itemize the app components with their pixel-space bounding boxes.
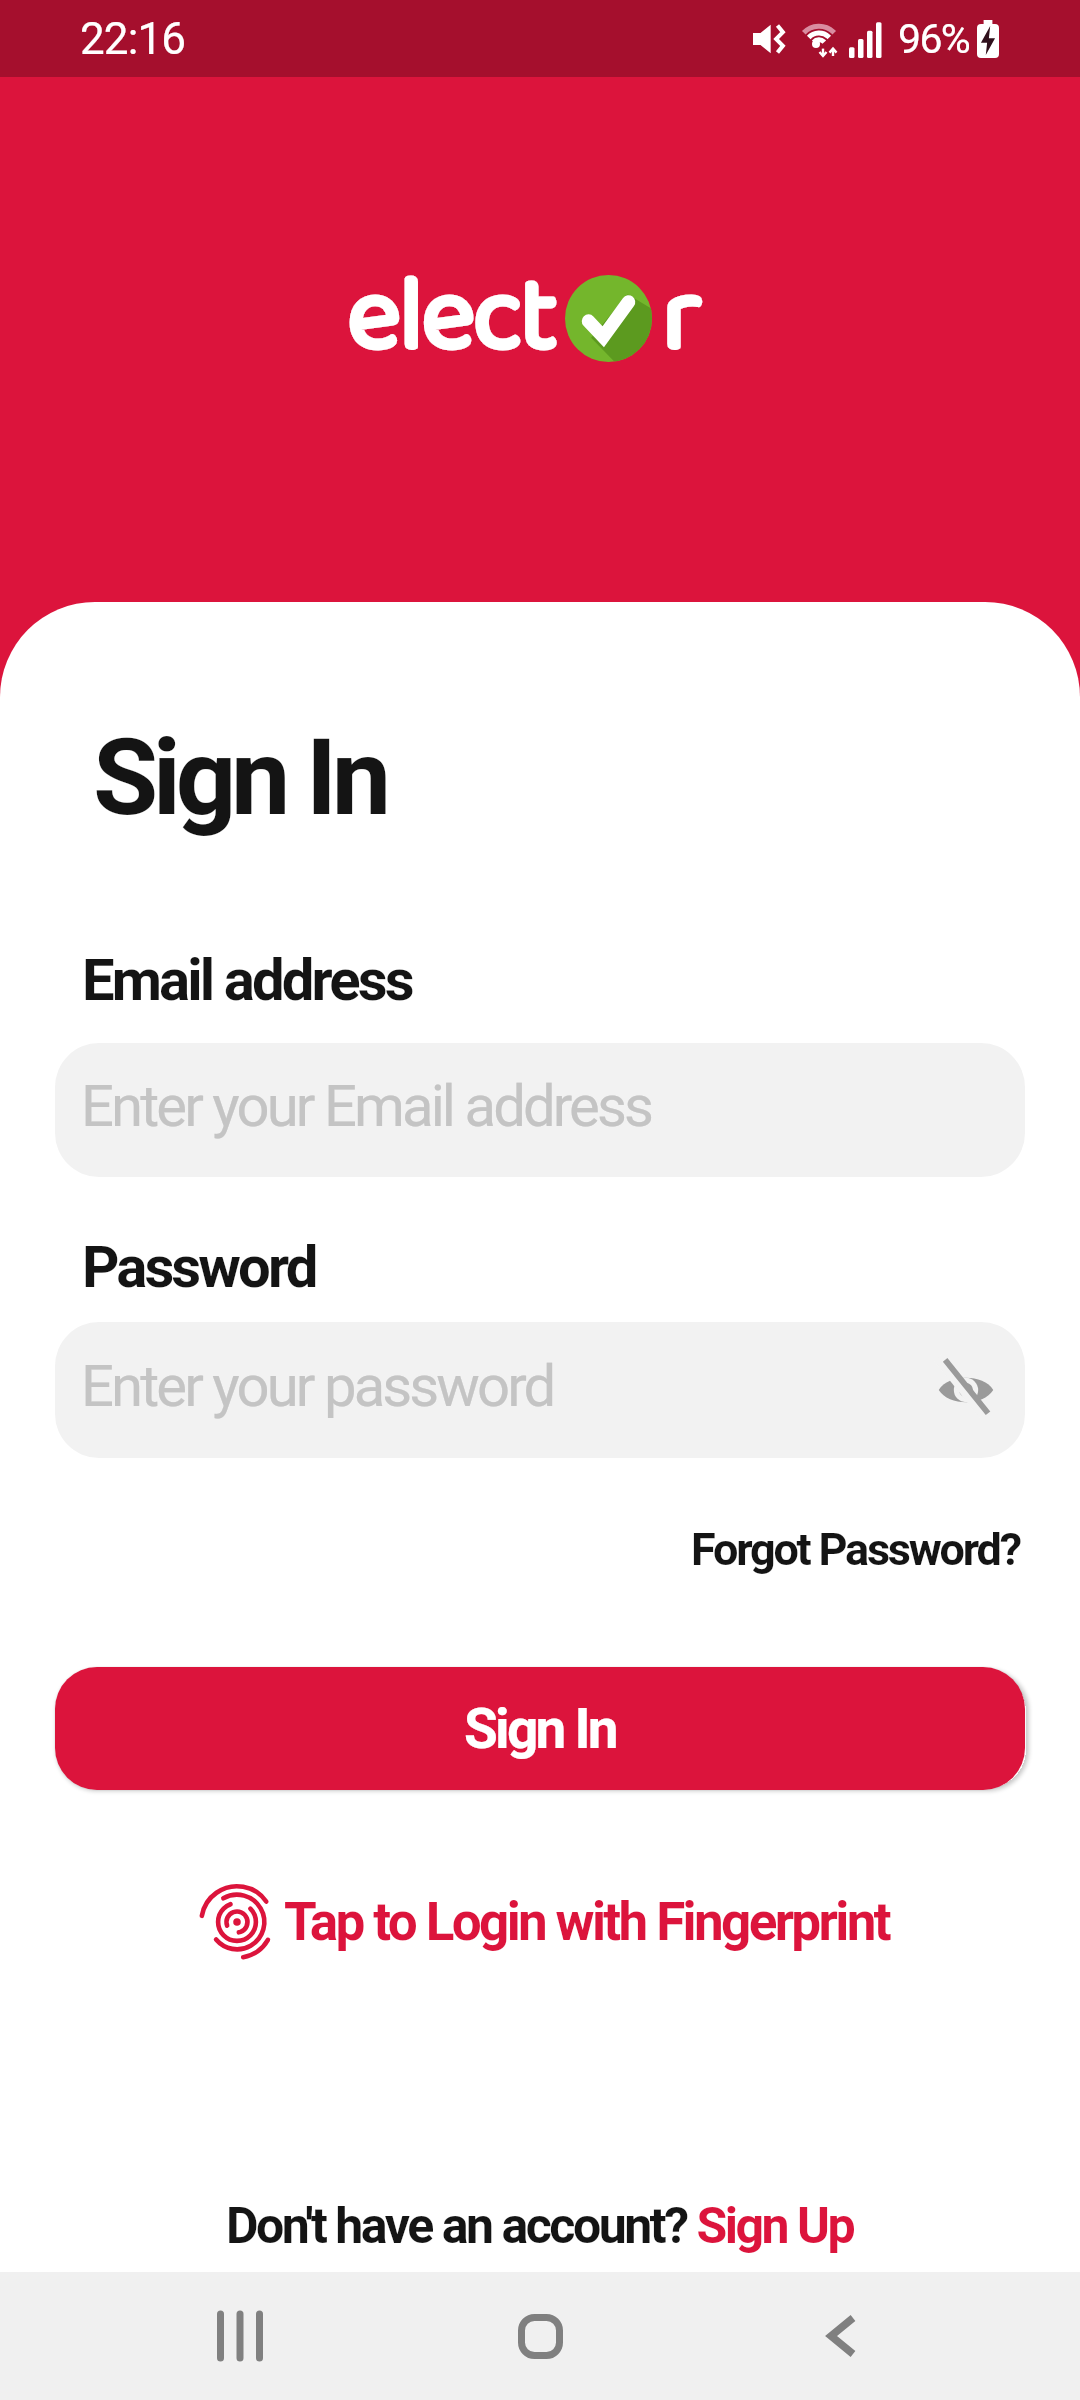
button[interactable] <box>217 2313 263 2359</box>
staticText: 96% <box>898 15 970 63</box>
staticText: Email address <box>82 946 412 1014</box>
button[interactable]: Forgot Password? <box>691 1523 1020 1576</box>
button[interactable]: Enter your password <box>55 1322 1025 1458</box>
staticText: elect <box>347 235 556 402</box>
button[interactable]: Tap to Login with Fingerprint <box>195 1880 889 1964</box>
button[interactable] <box>828 2315 856 2357</box>
staticText: 22:16 <box>80 13 186 65</box>
staticText: r <box>662 235 700 402</box>
staticText: r <box>662 235 700 402</box>
staticText: Enter your password <box>81 1352 554 1420</box>
staticText: elect <box>347 235 556 402</box>
staticText: Password <box>82 1233 316 1301</box>
staticText: Tap to Login with Fingerprint <box>284 1891 889 1953</box>
button[interactable]: Enter your Email address <box>55 1043 1025 1177</box>
staticText: Sign In <box>464 1697 616 1761</box>
button[interactable]: Don't have an account? Sign Up <box>226 2197 854 2256</box>
staticText: Sign In <box>93 716 386 840</box>
button[interactable] <box>518 2314 563 2359</box>
button[interactable]: Sign In <box>55 1667 1025 1790</box>
staticText: Enter your Email address <box>81 1072 651 1140</box>
